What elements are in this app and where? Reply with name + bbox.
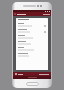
- button[interactable]: [18, 35, 46, 39]
- button[interactable]: [18, 29, 46, 33]
- button[interactable]: Home: [28, 77, 37, 78]
- button[interactable]: Home button: [26, 82, 39, 86]
- button[interactable]: [18, 47, 46, 51]
- button[interactable]: [18, 23, 46, 27]
- button[interactable]: Navigate up: [13, 12, 51, 16]
- button[interactable]: Navigate up: [14, 13, 16, 15]
- button[interactable]: [18, 41, 46, 45]
- button[interactable]: [18, 53, 46, 57]
